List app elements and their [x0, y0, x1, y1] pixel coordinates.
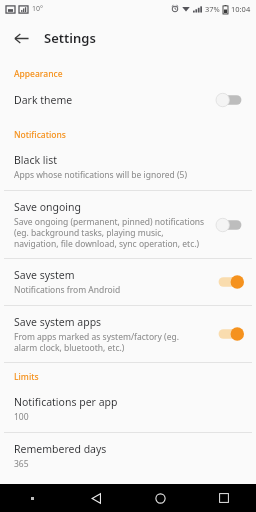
staticText: 10:04 [231, 4, 251, 14]
staticText: Black list [14, 153, 58, 167]
button[interactable]: Off [215, 217, 245, 233]
staticText: 37% [205, 4, 220, 14]
button[interactable]: On [215, 274, 245, 290]
staticText: 10° [32, 4, 44, 14]
button[interactable]: Save system apps [0, 306, 256, 362]
staticText: Save system apps [14, 315, 102, 329]
button[interactable]: Black list [0, 144, 256, 190]
staticText: Appearance [14, 68, 63, 80]
button[interactable]: On [215, 326, 245, 342]
staticText: Save ongoing [14, 200, 81, 214]
button[interactable]: Back [5, 22, 37, 54]
staticText: Save system [14, 268, 75, 282]
staticText: Settings [44, 29, 96, 47]
button[interactable]: Save ongoing [0, 191, 256, 258]
staticText: Notifications from Android [14, 284, 121, 296]
staticText: Notifications per app [14, 395, 118, 409]
staticText: 365 [14, 458, 29, 470]
button[interactable]: Dark theme [0, 83, 256, 117]
staticText: Dark theme [14, 93, 73, 107]
staticText: 100 [14, 411, 29, 423]
button[interactable]: Remembered days [0, 433, 256, 479]
staticText: Limits [14, 371, 39, 383]
staticText: From apps marked as system/factory (eg. … [14, 331, 179, 353]
staticText: Remembered days [14, 442, 107, 456]
button[interactable]: Off [215, 92, 245, 108]
staticText: Apps whose notifications will be ignored… [14, 169, 187, 181]
button[interactable]: Recents [192, 493, 256, 503]
staticText: Notifications [14, 129, 66, 141]
button[interactable]: Home [128, 493, 192, 504]
staticText: Save ongoing (permanent, pinned) notific… [14, 216, 205, 249]
button[interactable]: Back [64, 493, 128, 504]
button[interactable]: Notifications per app [0, 386, 256, 432]
button[interactable]: Save system [0, 259, 256, 305]
